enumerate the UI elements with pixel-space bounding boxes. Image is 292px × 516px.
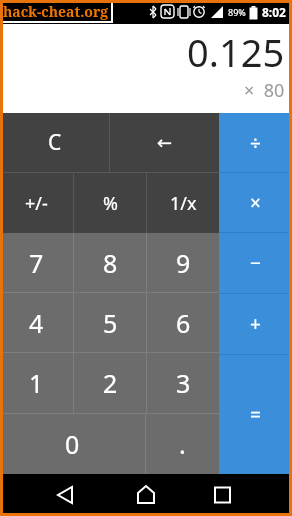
button[interactable]: 1 [0, 353, 73, 413]
button[interactable]: 3 [147, 353, 219, 413]
button[interactable]: × [219, 173, 292, 232]
staticText: 7 [29, 246, 44, 280]
staticText: 1/x [170, 191, 197, 216]
button[interactable]: 1/x [147, 173, 219, 233]
staticText: 89% [228, 6, 246, 18]
button[interactable]: 2 [74, 353, 146, 413]
button[interactable]: C [0, 113, 109, 172]
staticText: 2 [103, 366, 118, 400]
staticText: + [250, 311, 261, 337]
staticText: × 80 [244, 78, 285, 103]
button[interactable]: 0 [0, 414, 145, 474]
button[interactable] [98, 474, 195, 516]
button[interactable]: % [74, 173, 146, 233]
staticText: 3 [176, 366, 191, 400]
button[interactable] [0, 474, 98, 516]
staticText: = [250, 402, 261, 428]
button[interactable]: +/- [0, 173, 73, 233]
staticText: 6 [176, 306, 191, 340]
button[interactable]: − [219, 233, 292, 293]
staticText: 5 [103, 306, 118, 340]
staticText: hack-cheat.org [3, 2, 109, 21]
staticText: % [103, 191, 118, 216]
button[interactable]: 5 [74, 293, 146, 352]
button[interactable]: ← [110, 113, 219, 172]
button[interactable]: 9 [147, 233, 219, 292]
staticText: − [250, 250, 261, 276]
button[interactable]: + [219, 294, 292, 354]
staticText: 1 [29, 366, 44, 400]
staticText: ← [157, 132, 173, 153]
staticText: 4 [29, 306, 44, 340]
button[interactable]: 7 [0, 233, 73, 292]
button[interactable] [195, 474, 292, 516]
button[interactable]: 4 [0, 293, 73, 352]
staticText: × [250, 190, 261, 216]
staticText: C [48, 128, 62, 157]
staticText: ÷ [250, 130, 261, 156]
staticText: 0 [65, 427, 80, 461]
staticText: . [179, 427, 186, 461]
button[interactable]: 8 [74, 233, 146, 292]
staticText: 8 [103, 246, 118, 280]
staticText: 8:02 [262, 4, 286, 20]
staticText: +/- [25, 191, 48, 216]
button[interactable]: 6 [147, 293, 219, 352]
button[interactable]: . [146, 414, 219, 474]
staticText: 9 [176, 246, 191, 280]
button[interactable]: ÷ [219, 113, 292, 172]
button[interactable]: = [219, 355, 292, 474]
staticText: 0.125 [187, 26, 285, 78]
